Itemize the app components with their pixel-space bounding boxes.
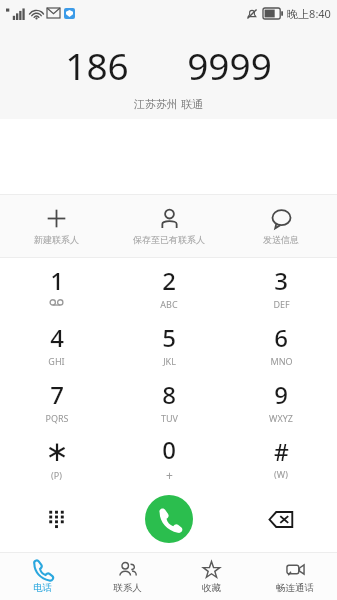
button[interactable]: 联系人 xyxy=(85,553,169,600)
staticText: TUV xyxy=(161,412,178,424)
button[interactable]: 5 xyxy=(113,315,225,372)
button[interactable]: 0 xyxy=(113,429,225,486)
staticText: 7 xyxy=(50,378,64,411)
button[interactable]: 9 xyxy=(225,372,337,429)
button[interactable]: 2 xyxy=(113,258,225,315)
button[interactable]: 3 xyxy=(225,258,337,315)
staticText: 发送信息 xyxy=(263,234,299,245)
staticText: 联系人 xyxy=(113,582,142,594)
staticText: 9999 xyxy=(187,40,272,90)
staticText: 晚上8:40 xyxy=(287,6,331,21)
staticText: 江苏苏州 联通 xyxy=(134,96,203,111)
button[interactable]: 7 xyxy=(0,372,113,429)
staticText: DEF xyxy=(273,298,290,310)
staticText: 8 xyxy=(162,378,176,411)
button[interactable]: 畅连通话 xyxy=(253,553,337,600)
staticText: JKL xyxy=(163,355,176,367)
button[interactable]: 发送信息 xyxy=(225,195,337,257)
button[interactable]: 6 xyxy=(225,315,337,372)
staticText: GHI xyxy=(48,355,65,367)
staticText: 5 xyxy=(162,321,176,354)
button[interactable]: 8 xyxy=(113,372,225,429)
staticText: 9 xyxy=(274,378,288,411)
button[interactable]: 新建联系人 xyxy=(0,195,113,257)
staticText: 新建联系人 xyxy=(34,234,79,245)
button[interactable]: 收藏 xyxy=(169,553,253,600)
staticText: # xyxy=(274,436,289,467)
button[interactable]: ∗ xyxy=(0,429,113,486)
button[interactable]: 1 xyxy=(0,258,113,315)
staticText: PQRS xyxy=(45,412,69,424)
staticText: 186 xyxy=(65,40,129,90)
staticText: 0 xyxy=(162,433,176,466)
staticText: 3 xyxy=(274,264,288,297)
button[interactable]: 电话 xyxy=(0,553,85,600)
button[interactable]: Call xyxy=(145,495,193,543)
staticText: 2 xyxy=(162,264,176,297)
staticText: WXYZ xyxy=(269,412,293,424)
button[interactable]: 4 xyxy=(0,315,113,372)
button[interactable]: Hide keypad xyxy=(0,486,113,552)
staticText: ∗ xyxy=(45,435,69,468)
staticText: 保存至已有联系人 xyxy=(133,234,205,245)
staticText: 6 xyxy=(274,321,288,354)
staticText: (P) xyxy=(51,469,62,481)
staticText: 4 xyxy=(50,321,64,354)
staticText: 电话 xyxy=(33,582,52,594)
staticText: 畅连通话 xyxy=(276,582,314,594)
staticText: (W) xyxy=(274,468,288,480)
staticText: 收藏 xyxy=(202,582,221,594)
button[interactable]: 保存至已有联系人 xyxy=(113,195,225,257)
button[interactable]: Backspace xyxy=(225,486,337,552)
button[interactable]: # xyxy=(225,429,337,486)
staticText: + xyxy=(166,467,173,483)
staticText: ABC xyxy=(160,298,178,310)
staticText: MNO xyxy=(270,355,293,367)
staticText: 1 xyxy=(50,264,64,297)
